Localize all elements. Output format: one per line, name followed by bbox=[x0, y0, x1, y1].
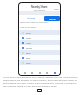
staticText: Apps on this device bbox=[20, 26, 37, 28]
staticText: Tasks bbox=[26, 62, 31, 64]
button[interactable]: Photos bbox=[19, 45, 60, 50]
button[interactable]: Help bbox=[54, 8, 59, 11]
button[interactable]: Play video bbox=[37, 89, 42, 92]
staticText: Drive bbox=[26, 32, 31, 34]
button[interactable]: Like bbox=[23, 71, 27, 75]
staticText: the contacts saved in your personal addr… bbox=[3, 85, 57, 88]
button[interactable]: Profile bbox=[53, 71, 57, 75]
staticText: applications are allowed to send content… bbox=[3, 79, 77, 82]
button[interactable]: Share bbox=[45, 71, 49, 75]
button[interactable]: Maps bbox=[19, 40, 60, 45]
staticText: Nearby Share bbox=[31, 5, 48, 8]
button[interactable]: Turn on bbox=[44, 16, 60, 21]
button[interactable]: Gmail bbox=[19, 35, 60, 40]
button[interactable]: Comment bbox=[30, 71, 34, 75]
button[interactable]: Repost bbox=[38, 71, 42, 75]
staticText: Select which apps can share with bbox=[20, 21, 48, 23]
button[interactable]: Tasks bbox=[19, 60, 60, 65]
staticText: If you share data between your nearby de… bbox=[3, 76, 78, 79]
staticText: with contacts bbox=[34, 9, 46, 11]
staticText: every device you own. Within these param… bbox=[3, 82, 77, 85]
button[interactable]: Docs bbox=[19, 55, 60, 60]
button[interactable]: Keep bbox=[19, 50, 60, 55]
staticText: Maps bbox=[26, 42, 31, 44]
staticText: Photos bbox=[26, 47, 32, 49]
staticText: Turn on bbox=[49, 18, 56, 20]
button[interactable]: Not now bbox=[27, 17, 35, 20]
staticText: Docs bbox=[26, 57, 31, 59]
button[interactable]: Drive bbox=[19, 30, 60, 35]
staticText: Gmail bbox=[26, 37, 31, 39]
staticText: Keep bbox=[26, 52, 31, 54]
